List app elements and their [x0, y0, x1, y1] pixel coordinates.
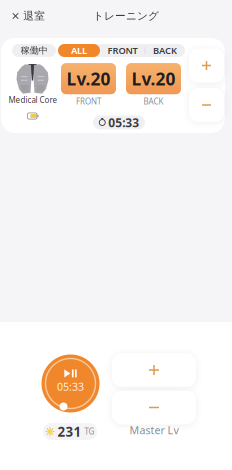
button[interactable]: FRONT — [100, 44, 145, 57]
button[interactable]: Increase master level — [112, 353, 196, 387]
staticText: BACK — [153, 44, 177, 57]
button[interactable]: 退室 — [7, 2, 51, 29]
staticText: 05:33 — [108, 114, 139, 130]
button[interactable]: ALL — [58, 44, 100, 57]
button[interactable]: Decrease level — [189, 88, 224, 122]
button[interactable]: Decrease master level — [112, 390, 196, 424]
button[interactable]: BACK — [145, 44, 185, 57]
staticText: 退室 — [23, 9, 45, 22]
staticText: 05:33 — [57, 379, 84, 394]
staticText: Lv.20 — [66, 67, 110, 90]
staticText: 231 — [57, 423, 81, 440]
button[interactable]: Play or pause — [41, 354, 99, 412]
button[interactable]: Increase level — [189, 48, 224, 82]
staticText: FRONT — [107, 44, 137, 57]
staticText: Master Lv — [129, 423, 178, 437]
staticText: トレーニング — [93, 9, 159, 22]
staticText: Medical Core — [8, 95, 57, 105]
staticText: BACK — [143, 96, 163, 107]
staticText: TG — [84, 426, 94, 437]
staticText: ALL — [71, 44, 87, 57]
staticText: 稼働中 — [20, 45, 47, 56]
button[interactable]: Lv.20 — [61, 63, 116, 107]
staticText: FRONT — [76, 96, 101, 107]
button[interactable]: Lv.20 — [126, 63, 181, 107]
staticText: Lv.20 — [131, 67, 175, 90]
